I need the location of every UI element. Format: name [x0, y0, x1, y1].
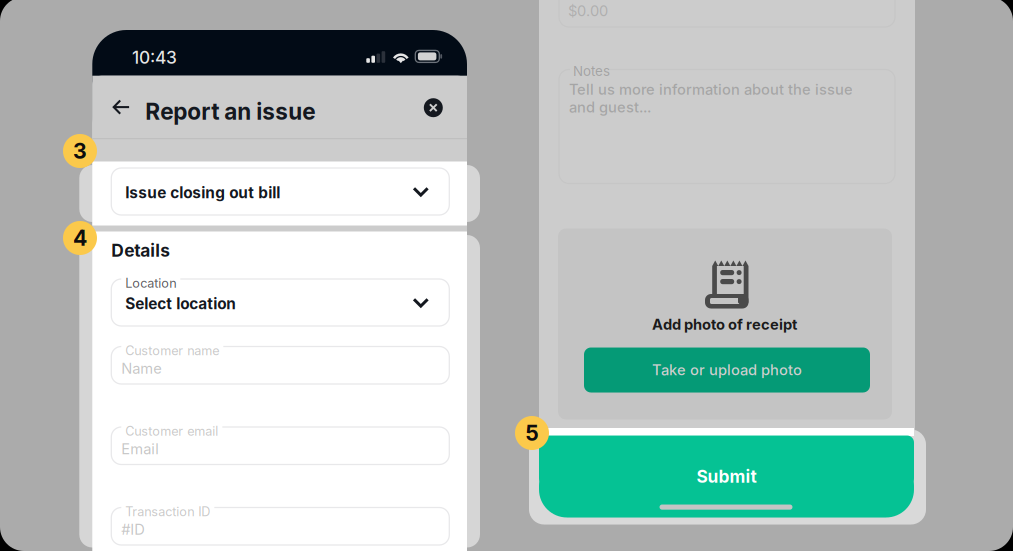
staticText: 10:43: [132, 47, 177, 68]
button[interactable]: Close: [424, 98, 443, 117]
staticText: 3: [73, 138, 87, 164]
staticText: Customer name: [125, 343, 219, 358]
staticText: 4: [73, 225, 87, 251]
staticText: Details: [111, 240, 170, 261]
staticText: Tell us more information about the issue…: [569, 80, 853, 116]
staticText: Issue closing out bill: [125, 183, 280, 202]
staticText: $0.00: [568, 2, 608, 20]
staticText: Take or upload photo: [652, 361, 802, 379]
button[interactable]: Issue closing out bill: [111, 168, 449, 215]
button[interactable]: Submit: [539, 435, 914, 517]
staticText: Report an issue: [145, 98, 315, 125]
button[interactable]: Take or upload photo: [584, 347, 870, 392]
staticText: Add photo of receipt: [652, 315, 797, 333]
staticText: #ID: [121, 520, 145, 538]
staticText: Submit: [696, 466, 756, 487]
staticText: Location: [125, 275, 176, 291]
staticText: Notes: [573, 63, 610, 79]
button[interactable]: Customer email: [111, 427, 449, 464]
button[interactable]: Back: [113, 99, 130, 115]
button[interactable]: Transaction ID: [111, 507, 449, 545]
staticText: Transaction ID: [125, 504, 210, 519]
staticText: Customer email: [125, 423, 218, 439]
button[interactable]: Location: [111, 279, 449, 326]
staticText: 5: [525, 420, 538, 446]
staticText: Select location: [125, 294, 236, 313]
staticText: Name: [121, 359, 162, 377]
button[interactable]: Customer name: [111, 346, 449, 384]
staticText: Email: [121, 440, 159, 458]
